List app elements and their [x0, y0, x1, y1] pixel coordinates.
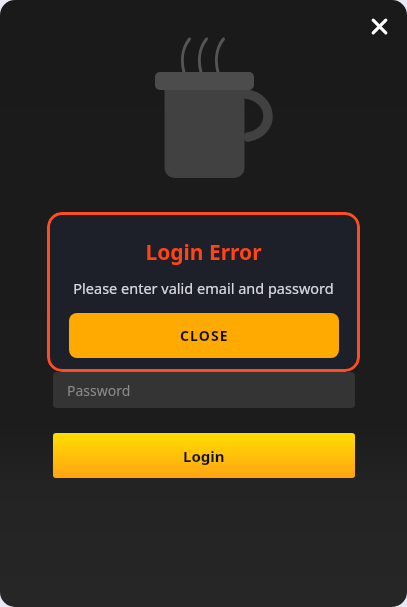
button[interactable]: Password: [53, 372, 355, 408]
staticText: Login Error: [145, 238, 262, 267]
staticText: Password: [67, 381, 131, 400]
staticText: Admin Portal: [154, 245, 253, 267]
staticText: BREW BEAN: [120, 206, 287, 241]
staticText: CLOSE: [180, 326, 229, 345]
button[interactable]: CLOSE: [69, 313, 339, 358]
button[interactable]: Login: [53, 433, 355, 478]
staticText: Login: [183, 446, 225, 466]
staticText: Please enter valid email and password: [73, 278, 334, 298]
button[interactable]: Close: [359, 6, 399, 46]
